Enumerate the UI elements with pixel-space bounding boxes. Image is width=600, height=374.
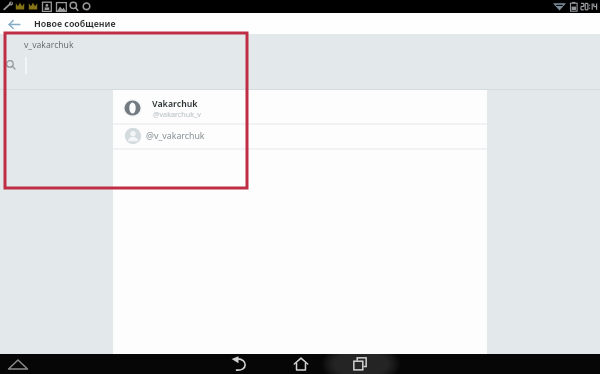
staticText: @v_vakarchuk xyxy=(146,130,205,142)
button[interactable]: Recent apps xyxy=(351,355,369,373)
button[interactable]: Expand xyxy=(8,356,29,374)
button[interactable]: Back xyxy=(7,17,22,32)
staticText: Новое сообщение xyxy=(34,18,116,30)
button[interactable]: @v_vakarchuk xyxy=(113,124,487,148)
staticText: v_vakarchuk xyxy=(24,39,74,51)
button[interactable]: Vakarchuk xyxy=(113,90,487,123)
staticText: Vakarchuk xyxy=(152,98,198,110)
button[interactable]: Home xyxy=(292,355,309,372)
button[interactable]: Back xyxy=(230,355,247,372)
staticText: @vakarchuk_v xyxy=(153,109,201,119)
